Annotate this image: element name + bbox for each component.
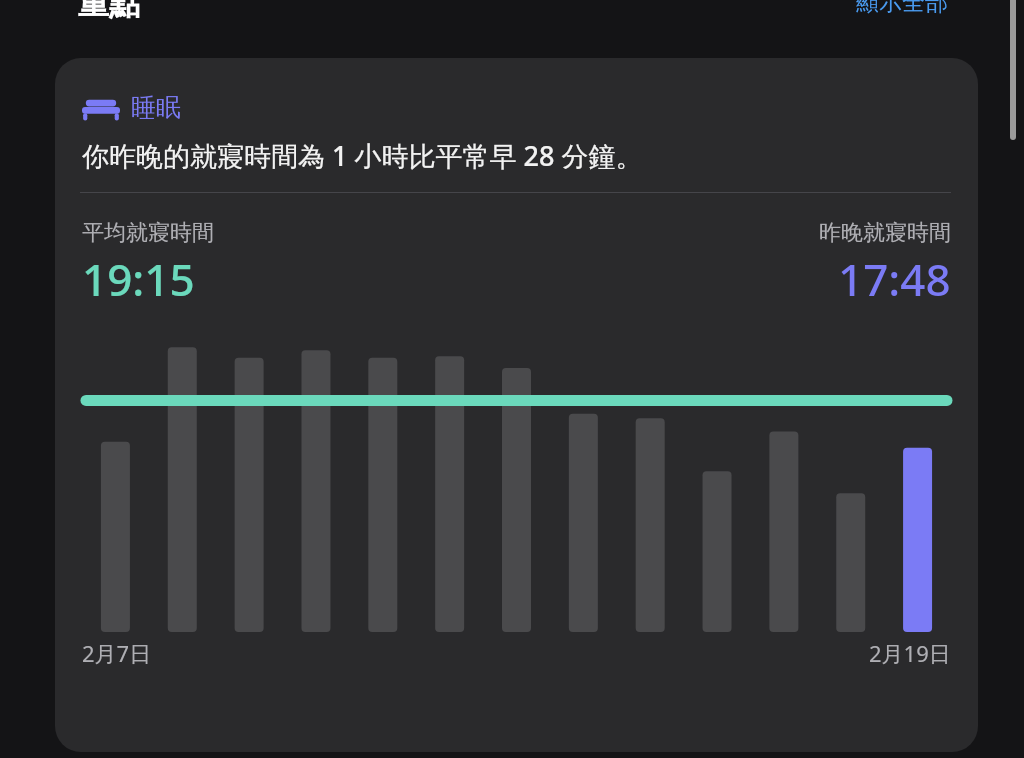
button[interactable]: Sleep [55,58,978,752]
staticText: 睡眠 [131,92,181,123]
staticText: 2月19日 [869,638,951,668]
staticText: 昨晚就寢時間 [819,219,951,247]
other: Sleep [82,95,120,121]
staticText: 平均就寢時間 [82,219,214,247]
staticText: 重點 [78,0,140,23]
button[interactable]: 顯示全部 [856,0,948,17]
staticText: 2月7日 [82,638,152,668]
staticText: 顯示全部 [856,0,948,17]
staticText: 19:15 [82,249,195,309]
staticText: 17:48 [838,249,951,309]
staticText: 你昨晚的就寢時間為 1 小時比平常早 28 分鐘。 [82,137,643,174]
